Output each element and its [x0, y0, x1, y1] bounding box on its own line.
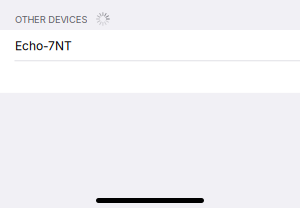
staticText: Echo-7NT — [15, 39, 72, 53]
button[interactable]: Echo-7NT — [0, 30, 300, 60]
staticText: OTHER DEVICES — [15, 14, 87, 25]
